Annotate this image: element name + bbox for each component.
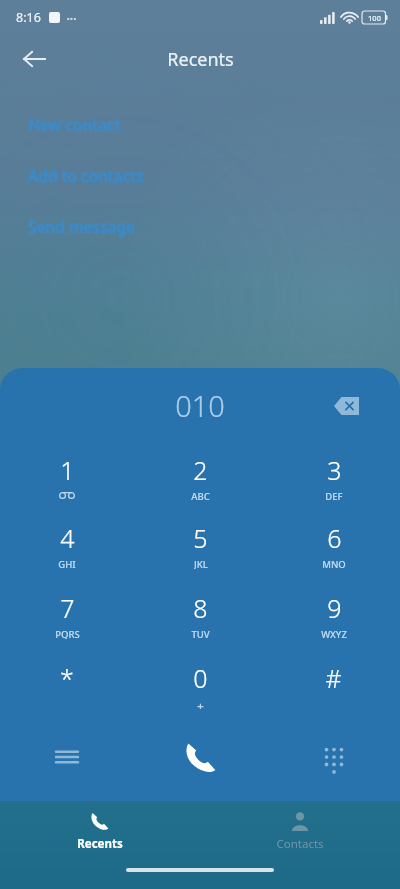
button[interactable]: 8 xyxy=(134,580,267,650)
staticText: ··· xyxy=(66,10,77,26)
staticText: 5 xyxy=(193,521,208,555)
staticText: 010 xyxy=(175,386,225,425)
button[interactable]: 1 xyxy=(0,444,134,510)
staticText: 9 xyxy=(327,591,342,625)
staticText: Add to contacts xyxy=(28,166,144,187)
button[interactable]: Call xyxy=(134,720,267,794)
staticText: Send message xyxy=(29,216,136,237)
staticText: Send message xyxy=(28,216,135,237)
staticText: Add to contacts xyxy=(29,166,145,187)
button[interactable]: Hide dialpad xyxy=(267,720,400,794)
button[interactable]: 9 xyxy=(267,580,400,650)
staticText: Send message xyxy=(28,215,135,236)
staticText: New contact xyxy=(27,113,120,134)
staticText: New contact xyxy=(28,113,121,134)
button[interactable]: 0 xyxy=(134,650,267,720)
button[interactable]: Recents xyxy=(0,801,200,861)
staticText: MNO xyxy=(322,558,346,569)
button[interactable]: 3 xyxy=(267,444,400,510)
staticText: Add to contacts xyxy=(29,165,145,186)
button[interactable]: 7 xyxy=(0,580,134,650)
staticText: + xyxy=(197,698,204,709)
staticText: 100 xyxy=(368,13,381,23)
staticText: New contact xyxy=(27,114,120,135)
button[interactable]: Backspace xyxy=(324,384,368,428)
staticText: Add to contacts xyxy=(28,164,144,185)
button[interactable]: # xyxy=(267,650,400,720)
staticText: 8 xyxy=(193,591,208,625)
staticText: 6 xyxy=(327,521,342,555)
staticText: * xyxy=(60,661,74,695)
button[interactable]: Back xyxy=(10,35,58,83)
staticText: Send message xyxy=(27,216,134,237)
button[interactable]: * xyxy=(0,650,134,720)
button[interactable]: Contacts xyxy=(200,801,400,861)
staticText: # xyxy=(325,661,342,695)
staticText: TUV xyxy=(191,628,210,639)
staticText: JKL xyxy=(194,558,208,569)
staticText: Send message xyxy=(29,217,136,238)
button[interactable]: 6 xyxy=(267,510,400,580)
staticText: Recents xyxy=(167,47,234,72)
staticText: Add to contacts xyxy=(27,165,143,186)
staticText: New contact xyxy=(29,115,122,136)
staticText: 7 xyxy=(60,591,75,625)
staticText: Send message xyxy=(27,215,134,236)
staticText: New contact xyxy=(28,115,121,136)
staticText: Recents xyxy=(77,836,123,852)
staticText: 0 xyxy=(193,661,208,695)
button[interactable]: 5 xyxy=(134,510,267,580)
button[interactable]: Add to contacts xyxy=(28,163,144,187)
staticText: Send message xyxy=(28,217,135,238)
staticText: 1 xyxy=(60,453,75,487)
staticText: Add to contacts xyxy=(28,165,144,186)
staticText: Contacts xyxy=(276,836,324,852)
staticText: DEF xyxy=(325,490,343,501)
staticText: New contact xyxy=(28,114,121,135)
staticText: GHI xyxy=(58,558,76,569)
staticText: ABC xyxy=(191,490,210,501)
staticText: PQRS xyxy=(55,628,80,639)
button[interactable]: 2 xyxy=(134,444,267,510)
staticText: Add to contacts xyxy=(27,164,143,185)
staticText: 3 xyxy=(327,453,342,487)
staticText: WXYZ xyxy=(321,628,347,639)
button[interactable]: New contact xyxy=(28,112,121,136)
staticText: 4 xyxy=(60,521,75,555)
button[interactable]: 4 xyxy=(0,510,134,580)
button[interactable]: More options xyxy=(0,720,134,794)
staticText: New contact xyxy=(29,114,122,135)
staticText: 8:16 xyxy=(16,9,41,26)
button[interactable]: Send message xyxy=(28,214,135,238)
staticText: 2 xyxy=(193,453,208,487)
